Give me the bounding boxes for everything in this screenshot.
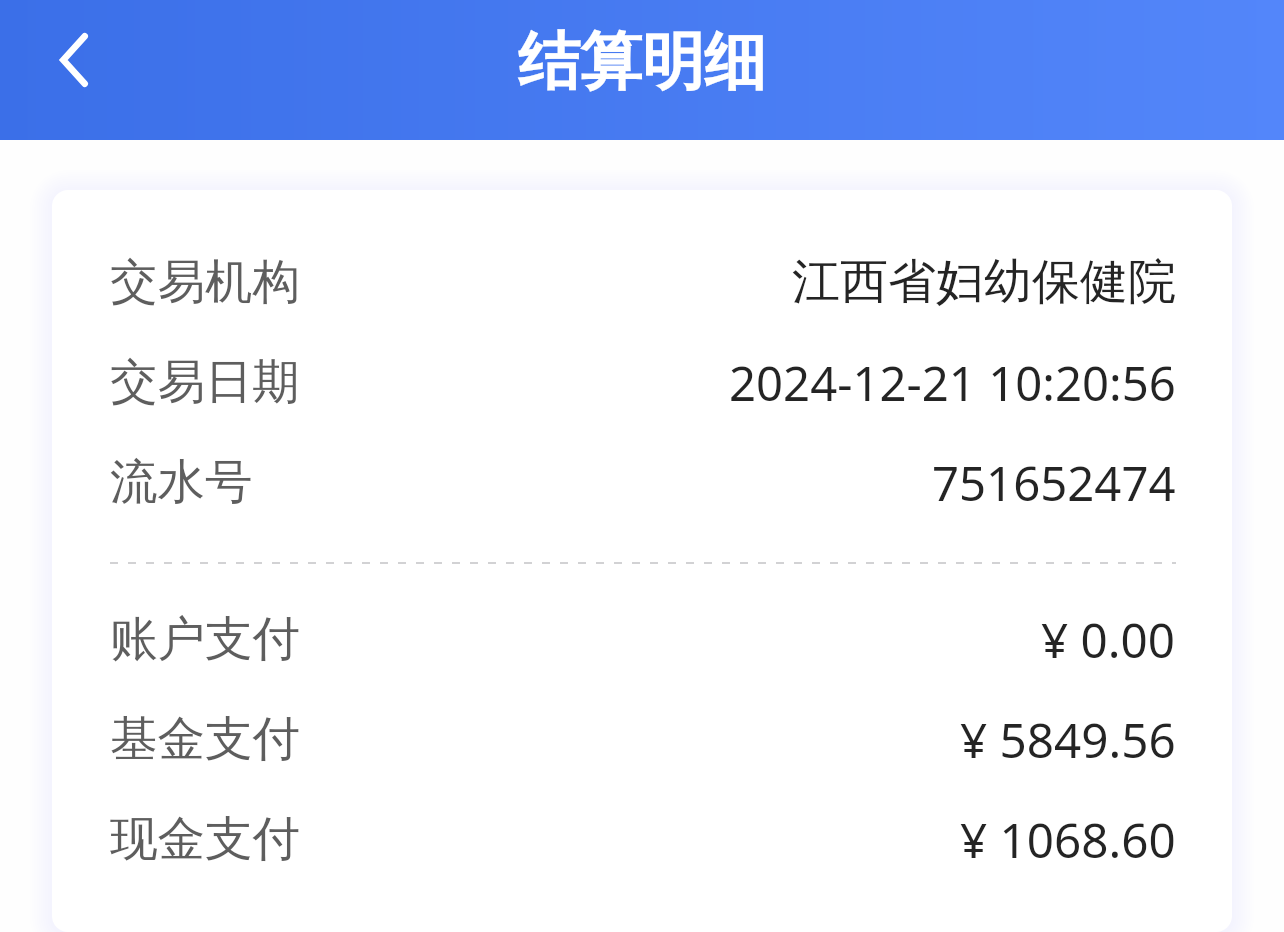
staticText: 交易机构 xyxy=(110,252,300,312)
button[interactable]: 交易机构 xyxy=(110,236,1176,336)
staticText: 2024-12-21 10:20:56 xyxy=(729,350,1176,414)
button[interactable]: Back xyxy=(30,16,118,104)
staticText: 结算明细 xyxy=(518,23,766,101)
button[interactable]: 账户支付 xyxy=(110,593,1176,693)
staticText: 交易日期 xyxy=(110,352,300,412)
staticText: ¥ 5849.56 xyxy=(960,707,1176,772)
button[interactable]: 现金支付 xyxy=(110,793,1176,893)
button[interactable]: 交易日期 xyxy=(110,336,1176,436)
staticText: ¥ 1068.60 xyxy=(960,807,1176,872)
staticText: 江西省妇幼保健院 xyxy=(792,252,1176,312)
staticText: 账户支付 xyxy=(110,609,300,669)
staticText: ¥ 0.00 xyxy=(1041,607,1176,672)
staticText: 流水号 xyxy=(110,452,253,512)
button[interactable]: 基金支付 xyxy=(110,693,1176,793)
button[interactable]: 流水号 xyxy=(110,436,1176,536)
staticText: 基金支付 xyxy=(110,709,300,769)
staticText: 751652474 xyxy=(932,450,1176,514)
staticText: 现金支付 xyxy=(110,809,300,869)
